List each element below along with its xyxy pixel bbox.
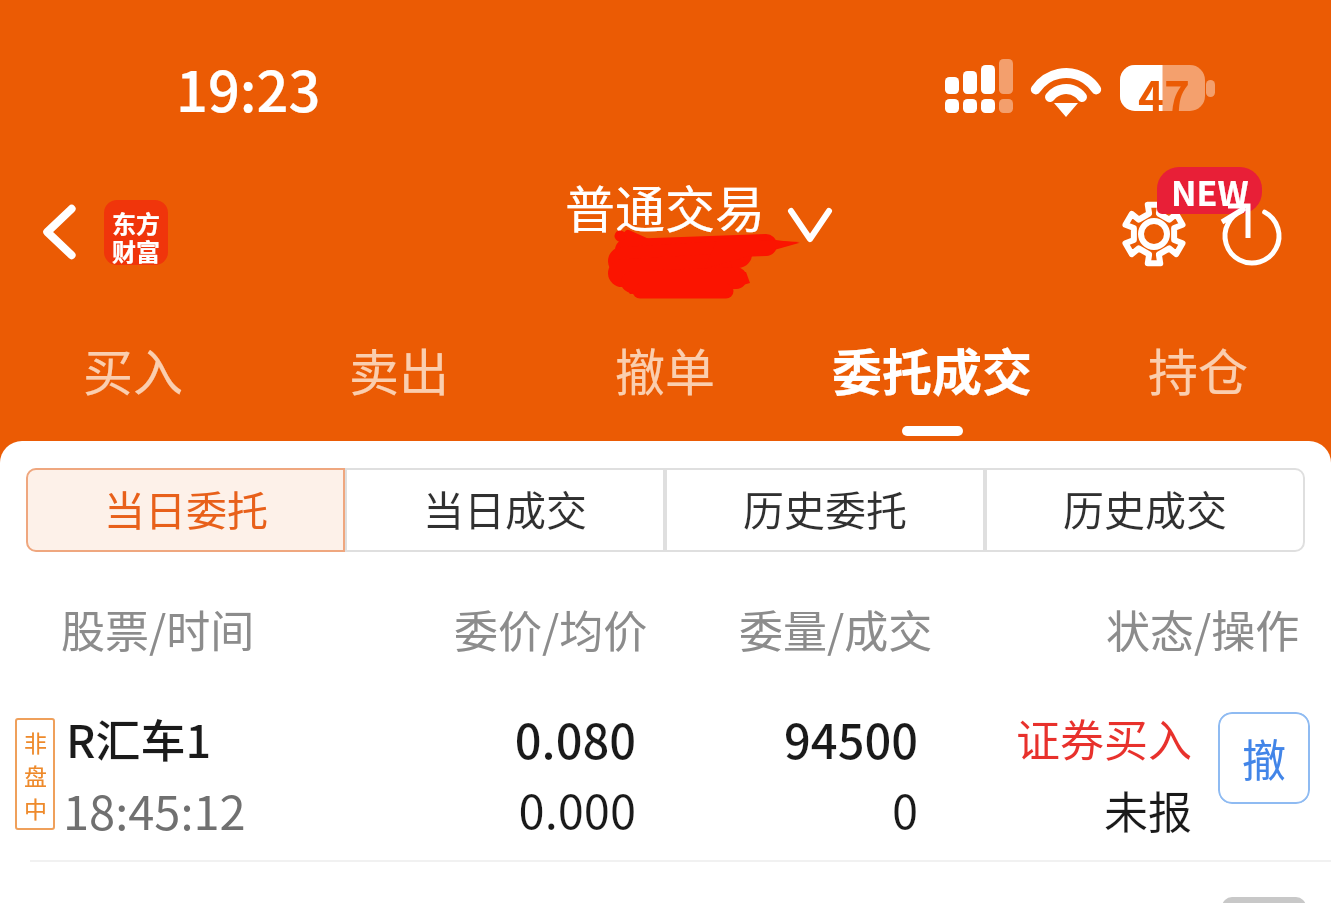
staticText: 委价/均价 xyxy=(454,597,648,661)
staticText: 股票/时间 xyxy=(61,597,255,661)
staticText: 0 xyxy=(518,774,918,842)
staticText: 当日成交 xyxy=(423,478,587,537)
staticText: 47 xyxy=(1138,63,1190,127)
staticText: 历史委托 xyxy=(743,478,907,537)
staticText: 0.080 xyxy=(236,704,636,772)
button[interactable]: 当日成交 xyxy=(345,468,665,552)
button[interactable]: 普通交易 账户切换 xyxy=(545,170,845,260)
button[interactable]: 买入 xyxy=(63,330,203,441)
button[interactable]: 委托成交 xyxy=(812,330,1052,441)
staticText: 普通交易 xyxy=(565,170,765,242)
staticText: 证券买入 xyxy=(792,706,1192,770)
button[interactable]: 持仓 xyxy=(1128,330,1268,441)
staticText: 非 xyxy=(24,725,47,758)
button[interactable]: 撤 xyxy=(1218,712,1310,804)
staticText: 东方 xyxy=(112,205,160,240)
staticText: 18:45:12 xyxy=(63,775,246,843)
button[interactable]: 历史成交 xyxy=(985,468,1305,552)
staticText: 持仓 xyxy=(1148,333,1248,405)
staticText: 当日委托 xyxy=(104,478,268,537)
button[interactable]: 非 xyxy=(0,690,1331,862)
staticText: 0.000 xyxy=(236,774,636,842)
staticText: 中 xyxy=(24,791,47,824)
staticText: NEW xyxy=(1171,167,1249,214)
staticText: 19:23 xyxy=(176,47,321,128)
staticText: 撤单 xyxy=(615,333,715,405)
button[interactable]: Back xyxy=(22,194,98,270)
button[interactable]: Settings xyxy=(1114,194,1194,274)
button[interactable]: 东方 xyxy=(104,200,168,265)
staticText: 买入 xyxy=(83,333,183,405)
staticText: 未报 xyxy=(792,778,1192,842)
button[interactable]: 卖出 xyxy=(329,330,469,441)
button[interactable]: 撤单 xyxy=(595,330,735,441)
button[interactable]: 历史委托 xyxy=(665,468,985,552)
staticText: 94500 xyxy=(518,704,918,772)
staticText: 卖出 xyxy=(349,333,449,405)
staticText: 财富 xyxy=(112,233,160,265)
button[interactable]: 当日委托 xyxy=(26,468,345,552)
button[interactable]: Refresh login xyxy=(1212,196,1292,276)
staticText: 历史成交 xyxy=(1063,478,1227,537)
staticText: 撤 xyxy=(1242,726,1286,790)
staticText: 委托成交 xyxy=(832,333,1032,405)
staticText: R汇车1 xyxy=(66,706,212,771)
staticText: 盘 xyxy=(24,758,47,791)
staticText: 状态/操作 xyxy=(1106,597,1300,661)
staticText: 委量/成交 xyxy=(739,597,933,661)
